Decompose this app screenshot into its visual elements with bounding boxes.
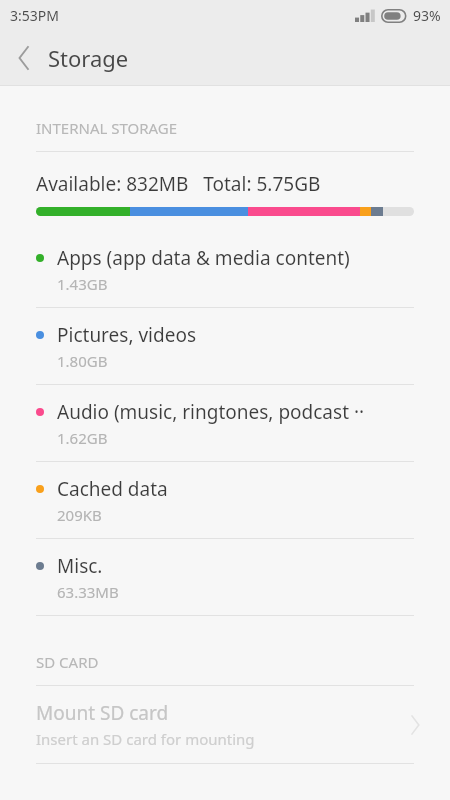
- button[interactable]: Misc.: [0, 539, 450, 615]
- staticText: Cached data: [57, 476, 168, 502]
- button[interactable]: Mount SD card: [0, 686, 450, 763]
- button[interactable]: Pictures, videos: [0, 308, 450, 384]
- staticText: 63.33MB: [57, 582, 119, 602]
- staticText: Pictures, videos: [57, 322, 196, 348]
- staticText: INTERNAL STORAGE: [36, 118, 178, 138]
- button[interactable]: Cached data: [0, 462, 450, 538]
- staticText: 3:53PM: [10, 6, 59, 25]
- staticText: 209KB: [57, 505, 102, 525]
- button[interactable]: Audio (music, ringtones, podcast ··: [0, 385, 450, 461]
- staticText: Audio (music, ringtones, podcast ··: [57, 399, 365, 425]
- staticText: Mount SD card: [36, 700, 169, 726]
- staticText: Misc.: [57, 553, 103, 579]
- button[interactable]: Apps (app data & media content): [0, 231, 450, 307]
- staticText: Insert an SD card for mounting: [36, 729, 255, 749]
- staticText: Storage: [48, 43, 129, 73]
- staticText: 1.80GB: [57, 351, 108, 371]
- staticText: Available: 832MB Total: 5.75GB: [36, 171, 321, 197]
- staticText: 1.62GB: [57, 428, 108, 448]
- staticText: 1.43GB: [57, 274, 108, 294]
- button[interactable]: Back: [0, 34, 48, 82]
- staticText: 93%: [413, 6, 441, 25]
- staticText: Apps (app data & media content): [57, 245, 350, 271]
- staticText: SD CARD: [36, 652, 99, 672]
